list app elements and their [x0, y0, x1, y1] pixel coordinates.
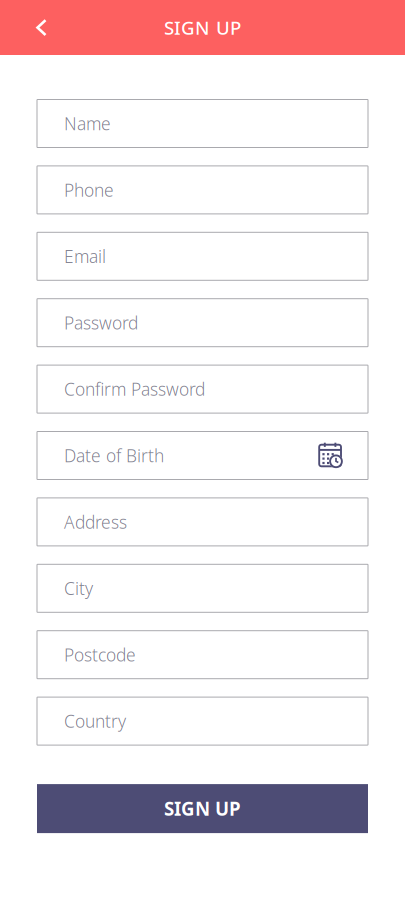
- button[interactable]: Password: [37, 299, 368, 347]
- button[interactable]: Confirm Password: [37, 365, 368, 413]
- staticText: Confirm Password: [64, 378, 205, 401]
- button[interactable]: Country: [37, 697, 368, 745]
- button[interactable]: City: [37, 564, 368, 612]
- staticText: City: [64, 577, 93, 600]
- button[interactable]: Postcode: [37, 631, 368, 679]
- button[interactable]: Back: [0, 3, 67, 52]
- staticText: Password: [64, 311, 138, 334]
- staticText: Date of Birth: [64, 444, 164, 467]
- button[interactable]: Phone: [37, 166, 368, 214]
- button[interactable]: Date of Birth: [37, 431, 368, 479]
- staticText: SIGN UP: [164, 15, 241, 40]
- button[interactable]: Name: [37, 99, 368, 147]
- button[interactable]: Email: [37, 232, 368, 280]
- button[interactable]: Address: [37, 498, 368, 546]
- staticText: SIGN UP: [164, 796, 241, 821]
- button[interactable]: SIGN UP: [37, 784, 368, 833]
- staticText: Address: [64, 510, 127, 533]
- staticText: Name: [64, 112, 111, 135]
- staticText: Postcode: [64, 643, 136, 666]
- staticText: Country: [64, 710, 126, 733]
- staticText: Phone: [64, 178, 114, 201]
- staticText: Email: [64, 245, 106, 268]
